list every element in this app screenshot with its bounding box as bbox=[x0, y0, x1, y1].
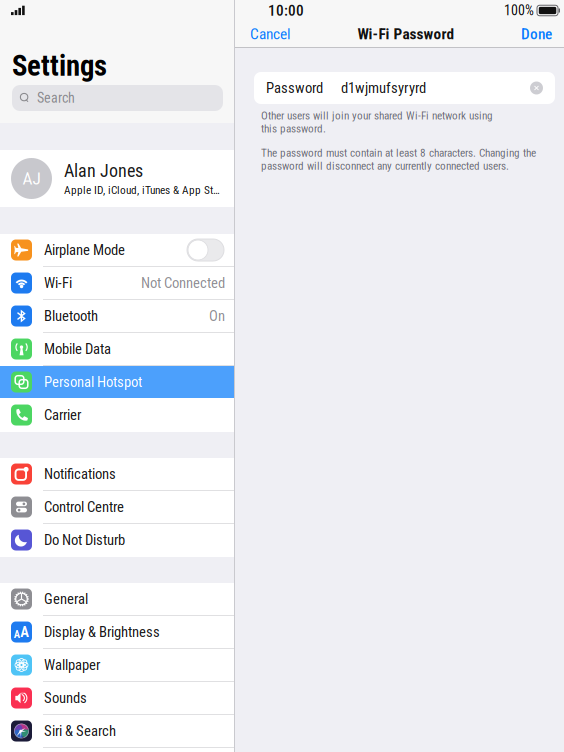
button[interactable]: AJ bbox=[0, 150, 234, 207]
staticText: On bbox=[209, 307, 225, 325]
staticText: Wi-Fi Password bbox=[357, 25, 454, 43]
staticText: Settings bbox=[12, 49, 107, 83]
staticText: Cancel bbox=[250, 25, 291, 43]
button[interactable]: Done bbox=[509, 21, 564, 47]
staticText: Carrier bbox=[44, 406, 81, 424]
button[interactable]: Sounds bbox=[0, 682, 234, 715]
staticText: Display & Brightness bbox=[44, 623, 160, 641]
staticText: Do Not Disturb bbox=[44, 531, 125, 549]
staticText: Bluetooth bbox=[44, 307, 98, 325]
button[interactable]: General bbox=[0, 583, 234, 616]
button[interactable]: Mobile Data bbox=[0, 333, 234, 366]
button[interactable]: A bbox=[0, 616, 234, 649]
button[interactable]: Control Centre bbox=[0, 491, 234, 524]
button[interactable]: Wi-Fi bbox=[0, 267, 234, 300]
staticText: Airplane Mode bbox=[44, 241, 125, 259]
button[interactable]: Bluetooth bbox=[0, 300, 234, 333]
button[interactable]: Cancel bbox=[235, 21, 303, 47]
staticText: Sounds bbox=[44, 689, 87, 707]
staticText: 100% bbox=[504, 2, 534, 19]
staticText: Done bbox=[521, 25, 552, 43]
staticText: Other users will join your shared Wi-Fi … bbox=[261, 109, 493, 122]
button[interactable]: Carrier bbox=[0, 399, 234, 432]
staticText: d1wjmufsyryrd bbox=[341, 79, 426, 97]
staticText: Siri & Search bbox=[44, 722, 116, 740]
staticText: The password must contain at least 8 cha… bbox=[261, 146, 536, 159]
staticText: A bbox=[20, 623, 29, 641]
staticText: Personal Hotspot bbox=[44, 373, 142, 391]
staticText: Wi-Fi bbox=[44, 274, 72, 292]
button[interactable]: Siri & Search bbox=[0, 715, 234, 748]
staticText: Alan Jones bbox=[64, 160, 143, 181]
button[interactable]: Wallpaper bbox=[0, 649, 234, 682]
staticText: Not Connected bbox=[141, 274, 225, 292]
staticText: password will disconnect any currently c… bbox=[261, 159, 509, 172]
button[interactable]: Notifications bbox=[0, 458, 234, 491]
staticText: Password bbox=[266, 79, 323, 97]
staticText: Control Centre bbox=[44, 498, 124, 516]
staticText: Apple ID, iCloud, iTunes & App St… bbox=[64, 183, 220, 197]
staticText: A bbox=[14, 628, 20, 641]
button[interactable]: Airplane Mode bbox=[0, 234, 234, 267]
staticText: Wallpaper bbox=[44, 656, 100, 674]
staticText: AJ bbox=[22, 168, 40, 189]
staticText: Mobile Data bbox=[44, 340, 111, 358]
button[interactable]: Personal Hotspot bbox=[0, 366, 234, 399]
staticText: General bbox=[44, 590, 88, 608]
staticText: Notifications bbox=[44, 465, 116, 483]
staticText: 10:00 bbox=[268, 1, 304, 19]
button[interactable]: Do Not Disturb bbox=[0, 524, 234, 557]
staticText: this password. bbox=[261, 122, 326, 135]
staticText: Search bbox=[37, 90, 75, 106]
